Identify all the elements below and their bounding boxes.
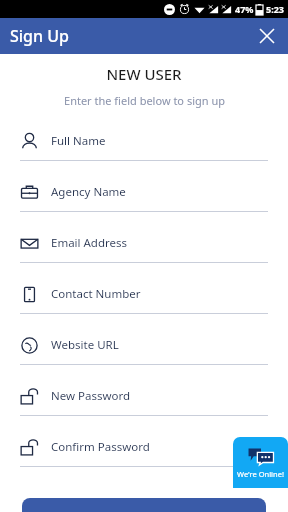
button[interactable]: Full Name	[0, 122, 288, 173]
staticText: Email Address	[51, 235, 128, 251]
staticText: Website URL	[51, 337, 119, 353]
staticText: We're Online!	[237, 469, 284, 479]
button[interactable]: Sign Up	[22, 498, 266, 512]
button[interactable]: Close	[252, 21, 282, 51]
staticText: NEW USER	[106, 64, 182, 84]
staticText: 5:23	[266, 3, 284, 15]
staticText: Sign Up	[10, 25, 69, 47]
button[interactable]: Confirm Password	[0, 428, 288, 479]
button[interactable]: Website URL	[0, 326, 288, 377]
staticText: Confirm Password	[51, 439, 150, 455]
button[interactable]: New Password	[0, 377, 288, 428]
button[interactable]: We're Online chat	[233, 437, 288, 488]
staticText: 47%	[235, 3, 254, 15]
staticText: Enter the field below to sign up	[64, 93, 225, 108]
button[interactable]: Agency Name	[0, 173, 288, 224]
staticText: Contact Number	[51, 286, 141, 302]
staticText: New Password	[51, 388, 131, 404]
button[interactable]: Contact Number	[0, 275, 288, 326]
staticText: Full Name	[51, 133, 106, 149]
staticText: Agency Name	[51, 184, 126, 200]
button[interactable]: Email Address	[0, 224, 288, 275]
